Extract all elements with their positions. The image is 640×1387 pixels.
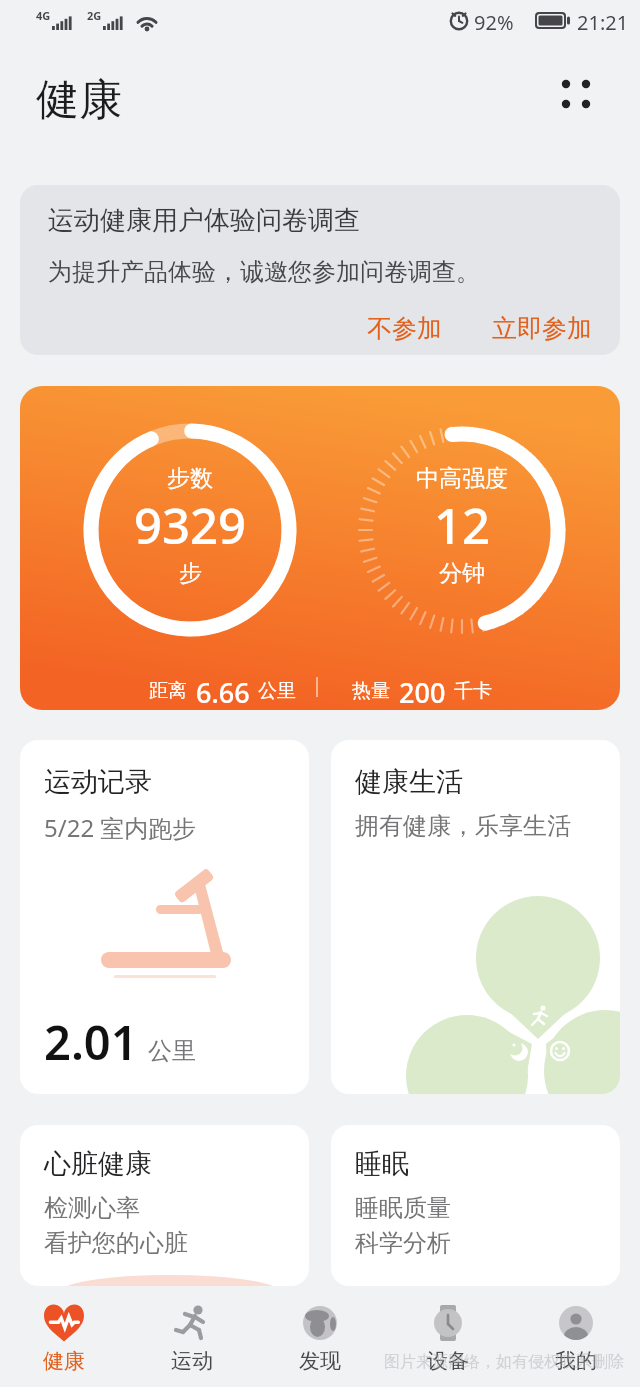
staticText: 6.66	[196, 674, 250, 708]
staticText: 我的	[555, 1348, 597, 1374]
staticText: 12	[434, 492, 491, 559]
staticText: 健康	[36, 73, 122, 127]
button[interactable]: 发现	[256, 1286, 384, 1387]
staticText: 运动记录	[44, 765, 152, 799]
button[interactable]: 不参加	[367, 313, 442, 344]
button[interactable]: 立即参加	[492, 313, 592, 344]
staticText: 健康	[43, 1348, 85, 1374]
staticText: 发现	[299, 1348, 341, 1374]
staticText: 睡眠质量	[355, 1193, 451, 1223]
staticText: 图片来源网络，如有侵权联系删除	[384, 1352, 624, 1372]
staticText: 拥有健康，乐享生活	[355, 811, 571, 841]
button[interactable]: 步数	[20, 386, 620, 710]
staticText: 睡眠	[355, 1147, 409, 1181]
staticText: 不参加	[367, 313, 442, 344]
button[interactable]: 心脏健康	[20, 1125, 309, 1286]
button[interactable]: 运动健康用户体验问卷调查	[20, 185, 620, 355]
button[interactable]: 健康生活	[331, 740, 620, 1094]
staticText: 步	[179, 559, 202, 588]
staticText: 2.01	[44, 1010, 138, 1074]
staticText: 92%	[474, 9, 514, 36]
staticText: 4G	[36, 8, 51, 23]
staticText: 看护您的心脏	[44, 1228, 188, 1258]
button[interactable]: 睡眠	[331, 1125, 620, 1286]
staticText: 中高强度	[416, 464, 508, 493]
staticText: 9329	[134, 492, 247, 559]
staticText: 热量	[352, 679, 390, 703]
staticText: 运动健康用户体验问卷调查	[48, 204, 360, 237]
button[interactable]: 设备	[384, 1286, 512, 1387]
staticText: 心脏健康	[44, 1147, 152, 1181]
staticText: 检测心率	[44, 1193, 140, 1223]
staticText: 21:21	[577, 9, 629, 36]
staticText: 2G	[87, 8, 102, 23]
staticText: 公里	[148, 1036, 196, 1066]
staticText: 步数	[167, 464, 213, 493]
staticText: 千卡	[454, 679, 492, 703]
staticText: 设备	[427, 1348, 469, 1374]
staticText: 运动	[171, 1348, 213, 1374]
staticText: 科学分析	[355, 1228, 451, 1258]
button[interactable]: 运动	[128, 1286, 256, 1387]
staticText: 立即参加	[492, 313, 592, 344]
staticText: 健康生活	[355, 765, 463, 799]
button[interactable]	[520, 44, 640, 185]
button[interactable]: 我的	[512, 1286, 640, 1387]
staticText: 5/22 室内跑步	[44, 811, 197, 844]
button[interactable]: 健康	[0, 1286, 128, 1387]
staticText: 分钟	[439, 559, 485, 588]
staticText: 200	[399, 674, 446, 708]
staticText: 为提升产品体验，诚邀您参加问卷调查。	[48, 257, 480, 287]
staticText: 距离	[149, 679, 187, 703]
button[interactable]: 运动记录	[20, 740, 309, 1094]
staticText: 公里	[258, 679, 296, 703]
